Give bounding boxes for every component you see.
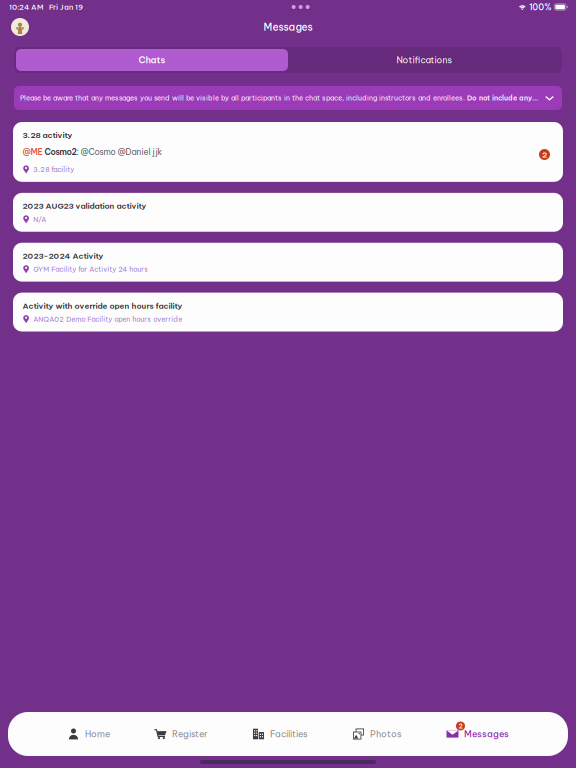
staticText: Chats [138, 54, 165, 66]
staticText: 10:24 AM [9, 2, 43, 12]
staticText: 2023-2024 Activity [22, 251, 103, 261]
button[interactable]: 2 [424, 712, 531, 756]
staticText: Facilities [270, 728, 308, 740]
staticText: 3.28 activity [22, 130, 72, 140]
staticText: Photos [370, 728, 402, 740]
staticText: Cosmo2 [42, 147, 76, 157]
button[interactable]: 2023-2024 Activity [13, 243, 563, 282]
button[interactable]: Activity with override open hours facili… [13, 293, 563, 331]
button[interactable]: Profile [11, 18, 29, 36]
staticText: Home [85, 728, 110, 740]
staticText: N/A [33, 215, 46, 224]
staticText: 3.28 facility [33, 165, 74, 174]
staticText: 2 [542, 149, 547, 159]
staticText: @ME [22, 147, 42, 157]
staticText: Notifications [396, 54, 451, 65]
button[interactable]: 2023 AUG23 validation activity [13, 193, 563, 232]
staticText: Do not include any... [467, 94, 538, 102]
button[interactable]: Register [132, 712, 230, 756]
staticText: ANQA02 Demo Facility open hours override [33, 315, 182, 323]
staticText: 2023 AUG23 validation activity [22, 201, 146, 211]
staticText: Register [172, 728, 208, 740]
button[interactable]: Chats [16, 49, 288, 71]
staticText: Fri Jan 19 [43, 2, 83, 12]
staticText: Messages [464, 728, 509, 740]
staticText: Please be aware that any messages you se… [20, 94, 467, 102]
staticText: 2 [458, 722, 462, 730]
staticText: Activity with override open hours facili… [22, 301, 182, 311]
button[interactable]: Home [45, 712, 132, 756]
button[interactable]: Photos [330, 712, 424, 756]
button[interactable]: Notifications [288, 49, 560, 71]
staticText: 100% [529, 2, 551, 12]
button[interactable]: Please be aware that any messages you se… [14, 86, 562, 110]
staticText: Messages [263, 21, 312, 33]
button[interactable]: Facilities [230, 712, 330, 756]
button[interactable]: 3.28 activity [13, 122, 563, 182]
staticText: : @Cosmo @Daniel jjk [76, 147, 162, 157]
staticText: GYM Facility for Activity 24 hours [33, 265, 148, 274]
